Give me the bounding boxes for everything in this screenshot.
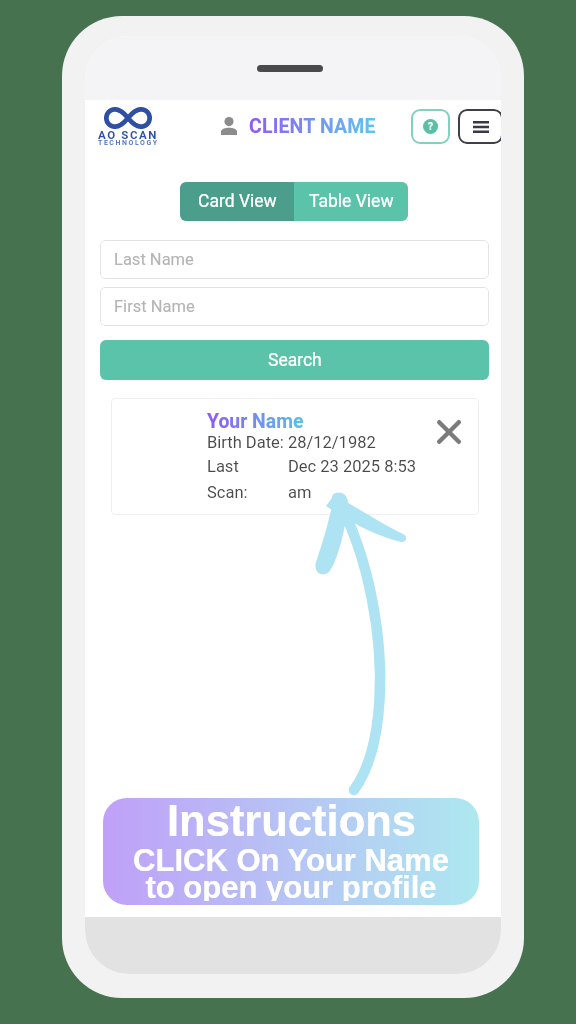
button[interactable]: Instructions bbox=[103, 798, 479, 905]
button[interactable]: Table View bbox=[294, 182, 408, 221]
button[interactable]: Last Name bbox=[100, 240, 489, 279]
staticText: Dec 23 2025 8:53 am bbox=[288, 457, 416, 502]
staticText: Your Name bbox=[207, 410, 304, 433]
staticText: Card View bbox=[198, 191, 277, 212]
staticText: First Name bbox=[114, 297, 195, 316]
button[interactable]: Close bbox=[437, 420, 461, 444]
button[interactable]: Card View bbox=[180, 182, 294, 221]
staticText: Last Scan: bbox=[207, 457, 248, 502]
staticText: Table View bbox=[309, 191, 394, 212]
staticText: Instructions bbox=[167, 798, 416, 846]
staticText: Last Name bbox=[114, 250, 194, 269]
button[interactable]: Menu bbox=[458, 109, 501, 144]
staticText: Birth Date: 28/12/1982 bbox=[207, 433, 376, 452]
staticText: ? bbox=[428, 121, 433, 133]
staticText: Search bbox=[268, 350, 322, 371]
staticText: CLIENT NAME bbox=[249, 115, 376, 138]
button[interactable]: Help bbox=[411, 109, 450, 144]
staticText: TECHNOLOGY bbox=[98, 139, 159, 147]
staticText: CLICK On Your Name to open your profile bbox=[133, 843, 449, 901]
button[interactable]: First Name bbox=[100, 287, 489, 326]
staticText: AO SCAN bbox=[98, 128, 159, 141]
button[interactable]: Your Name bbox=[111, 398, 479, 515]
button[interactable]: Search bbox=[100, 340, 489, 380]
